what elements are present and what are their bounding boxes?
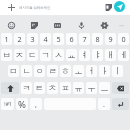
staticText: 4	[43, 34, 48, 44]
staticText: ㄴ	[22, 66, 31, 77]
button[interactable]: Enter	[112, 98, 129, 110]
button[interactable]: ㅅ	[53, 49, 64, 61]
button[interactable]: ㄱ	[40, 49, 51, 61]
staticText: ㅓ	[87, 66, 96, 77]
button[interactable]: ㅍ	[60, 82, 71, 94]
staticText: 9	[108, 34, 113, 44]
staticText: .	[103, 99, 105, 109]
staticText: ㅅ	[54, 50, 63, 61]
staticText: ,	[35, 99, 37, 109]
staticText: ㅔ	[119, 50, 128, 61]
staticText: 6	[69, 34, 74, 44]
button[interactable]: ㅋ	[21, 82, 32, 94]
button[interactable]: Settings	[96, 16, 112, 34]
button[interactable]: ㅐ	[105, 49, 116, 61]
button[interactable]: More options	[114, 16, 128, 34]
staticText: ㅊ	[48, 83, 57, 94]
staticText: ㅛ	[67, 50, 76, 61]
button[interactable]: ㅕ	[79, 49, 90, 61]
button[interactable]: Send	[114, 1, 125, 12]
staticText: !#1	[4, 101, 12, 108]
button[interactable]: Backspace	[112, 82, 129, 94]
button[interactable]: ㅌ	[34, 82, 45, 94]
button[interactable]: GIF	[49, 16, 65, 34]
staticText: 5	[56, 34, 61, 44]
button[interactable]: ㅇ	[34, 65, 45, 77]
button[interactable]: %	[16, 98, 28, 110]
staticText: ㅜ	[87, 83, 96, 94]
staticText: ㅎ	[61, 66, 70, 77]
staticText: 8	[95, 34, 100, 44]
button[interactable]: 0	[118, 33, 129, 45]
button[interactable]: .	[98, 98, 110, 110]
button[interactable]: ㅓ	[86, 65, 97, 77]
button[interactable]: Voice input	[73, 16, 89, 34]
button[interactable]: Add attachment	[4, 0, 18, 15]
button[interactable]: ㅎ	[60, 65, 71, 77]
button[interactable]: ㄷ	[27, 49, 38, 61]
staticText: ㅗ	[74, 66, 83, 77]
button[interactable]: ㅊ	[47, 82, 58, 94]
staticText: ㅍ	[61, 83, 70, 94]
staticText: ㅣ	[113, 66, 122, 77]
button[interactable]: ㅔ	[118, 49, 129, 61]
button[interactable]: ㅂ	[1, 49, 12, 61]
staticText: ㄹ	[48, 66, 57, 77]
button[interactable]: ㅡ	[99, 82, 110, 94]
button[interactable]: Stickers	[26, 16, 42, 34]
staticText: 7	[82, 34, 87, 44]
staticText: ㅠ	[74, 83, 83, 94]
button[interactable]: Shift	[1, 82, 19, 94]
staticText: 2	[17, 34, 22, 44]
staticText: ㅁ	[9, 66, 18, 77]
staticText: ㅐ	[106, 50, 115, 61]
button[interactable]: ㄴ	[21, 65, 32, 77]
button[interactable]: ㅁ	[8, 65, 19, 77]
button[interactable]: ㅑ	[92, 49, 103, 61]
button[interactable]: ㅜ	[86, 82, 97, 94]
button[interactable]: 8	[92, 33, 103, 45]
staticText: ㅡ	[100, 83, 109, 94]
button[interactable]: ㄹ	[47, 65, 58, 77]
button[interactable]: 4	[40, 33, 51, 45]
staticText: ㅌ	[35, 83, 44, 94]
button[interactable]: 6	[66, 33, 77, 45]
button[interactable]: ㅠ	[73, 82, 84, 94]
button[interactable]: 1	[1, 33, 12, 45]
button[interactable]: 5	[53, 33, 64, 45]
staticText: ㅈ	[15, 50, 24, 61]
staticText: ㅕ	[80, 50, 89, 61]
staticText: 3	[30, 34, 35, 44]
button[interactable]: 7	[79, 33, 90, 45]
staticText: ㅂ	[2, 50, 11, 61]
button[interactable]: 3	[27, 33, 38, 45]
button[interactable]: ,	[30, 98, 42, 110]
button[interactable]: 9	[105, 33, 116, 45]
staticText: %	[18, 98, 26, 110]
staticText: ㅇ	[35, 66, 44, 77]
button[interactable]: 2	[14, 33, 25, 45]
staticText: 0	[121, 34, 126, 44]
staticText: 메시지를 입력하세요	[19, 5, 51, 10]
button[interactable]: Emoji	[3, 16, 19, 34]
button[interactable]: ㅗ	[73, 65, 84, 77]
staticText: ㄱ	[41, 50, 50, 61]
button[interactable]: ㅏ	[99, 65, 110, 77]
button[interactable]: ㅈ	[14, 49, 25, 61]
staticText: ㄷ	[28, 50, 37, 61]
button[interactable]: ㅛ	[66, 49, 77, 61]
button[interactable]: Sticker	[103, 0, 114, 15]
button[interactable]: !#1	[1, 98, 14, 110]
staticText: ㅋ	[22, 83, 31, 94]
staticText: ㅑ	[93, 50, 102, 61]
button[interactable]: ㅣ	[112, 65, 123, 77]
staticText: ㅏ	[100, 66, 109, 77]
staticText: 1	[4, 34, 9, 44]
